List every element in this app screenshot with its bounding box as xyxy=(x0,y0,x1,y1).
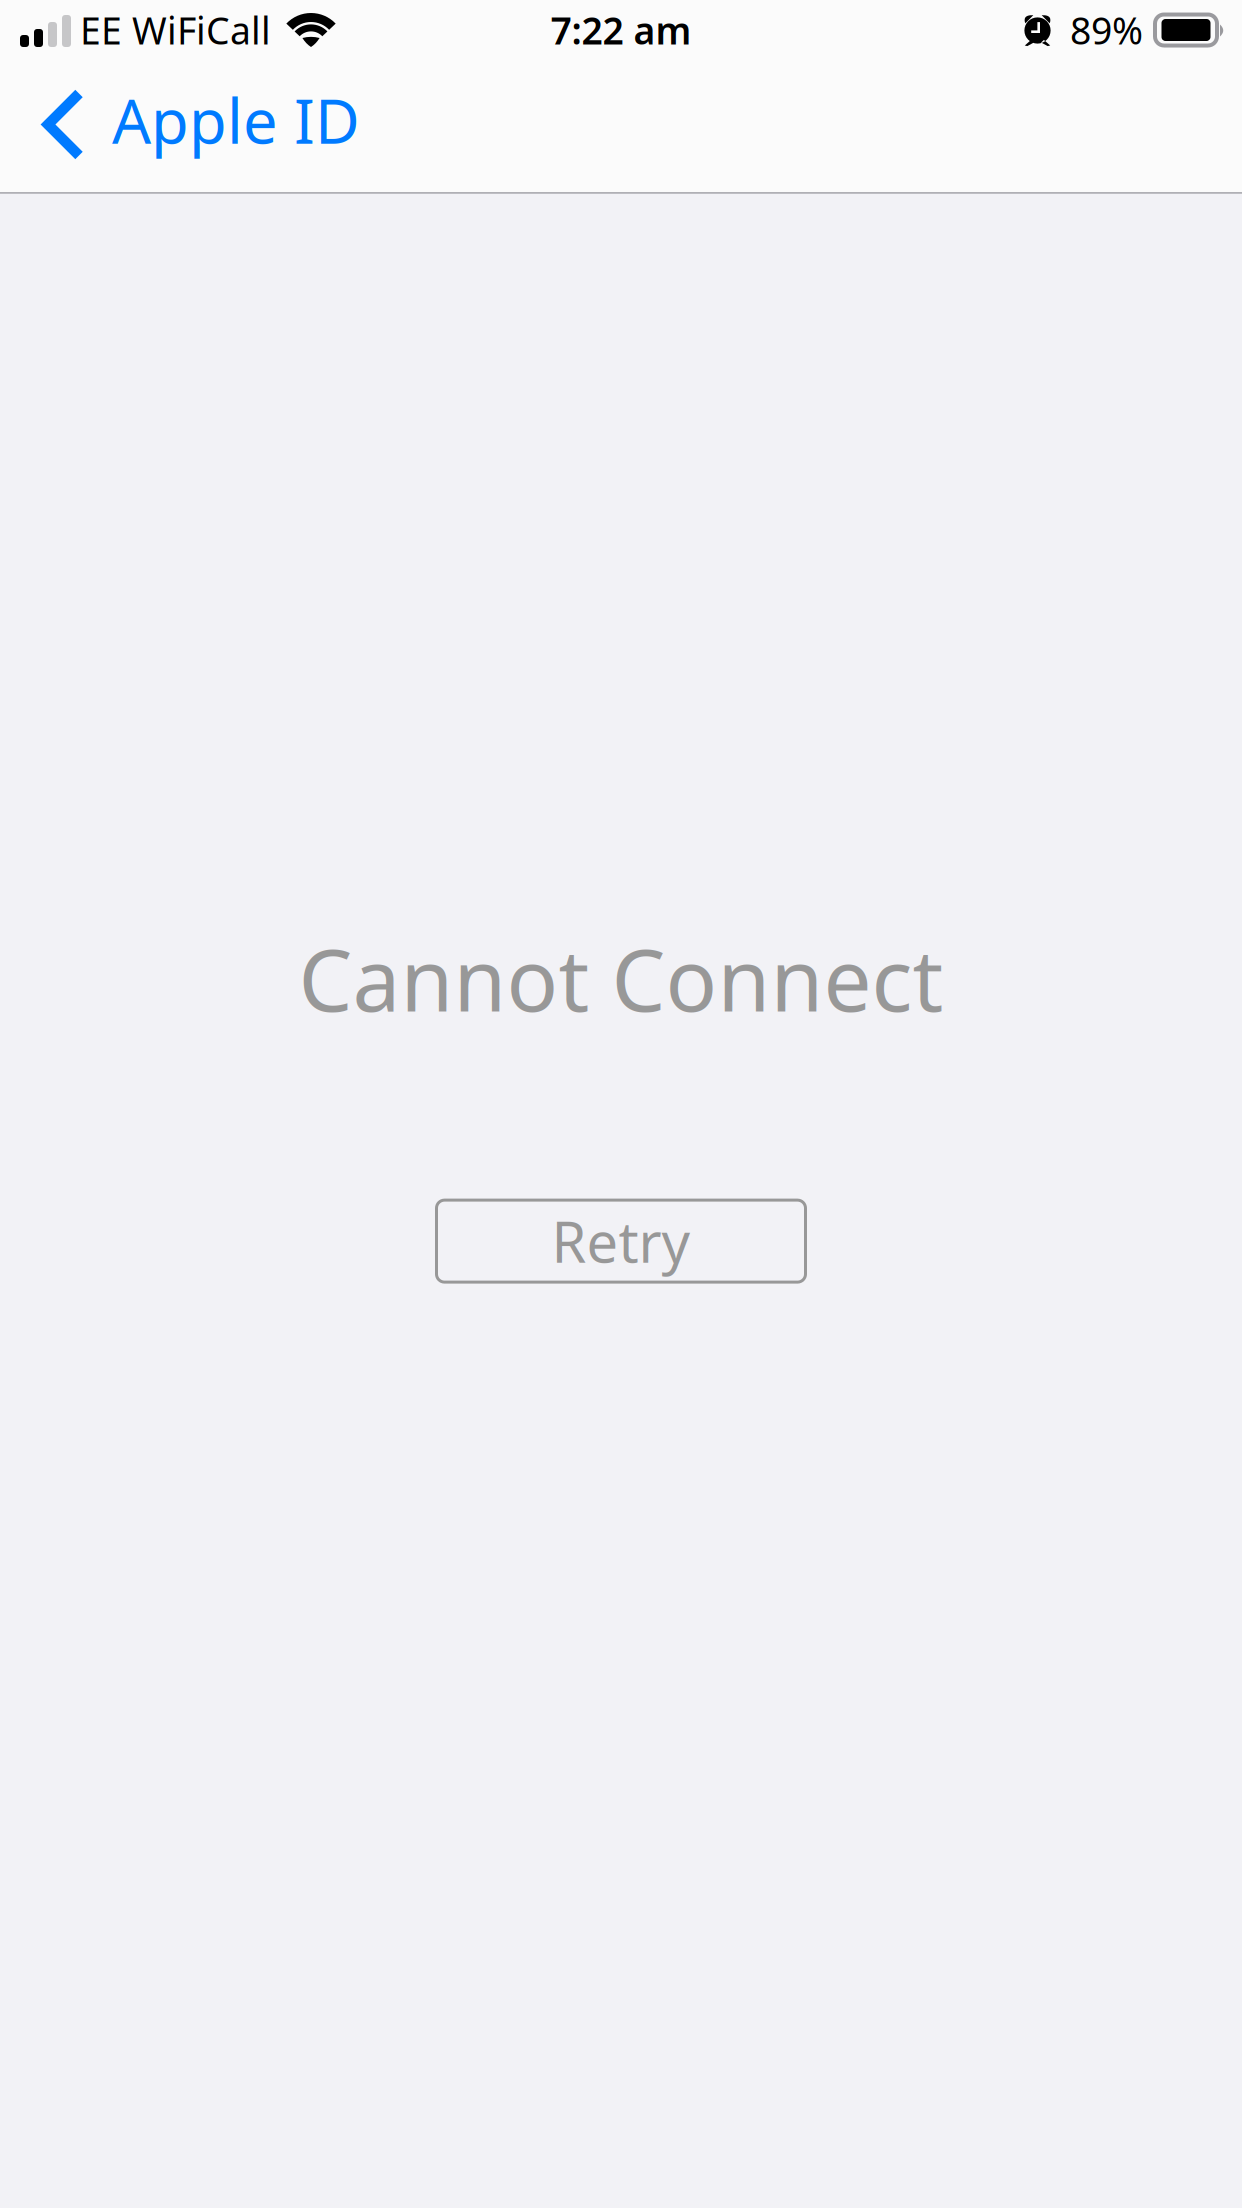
button[interactable]: Back to Apple ID xyxy=(0,61,388,191)
staticText: 89% xyxy=(1070,5,1143,55)
staticText: Retry xyxy=(551,1204,690,1278)
staticText: 7:22 am xyxy=(550,5,691,55)
staticText: Cannot Connect xyxy=(298,922,943,1035)
button[interactable]: Retry xyxy=(436,1200,805,1282)
staticText: Apple ID xyxy=(112,79,360,161)
staticText: EE WiFiCall xyxy=(80,5,271,55)
